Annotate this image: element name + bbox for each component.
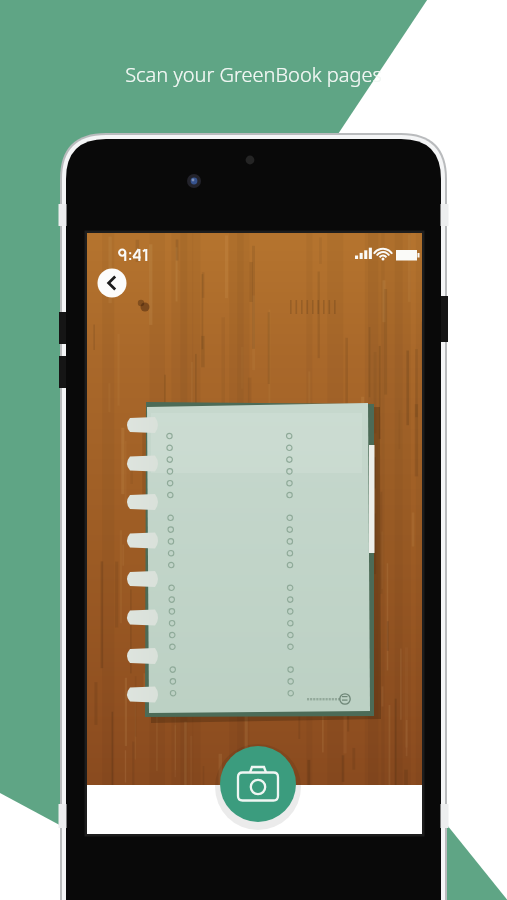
- button[interactable]: Back: [97, 268, 127, 298]
- staticText: Scan your GreenBook pages: [0, 61, 507, 88]
- button[interactable]: Take photo: [220, 746, 296, 822]
